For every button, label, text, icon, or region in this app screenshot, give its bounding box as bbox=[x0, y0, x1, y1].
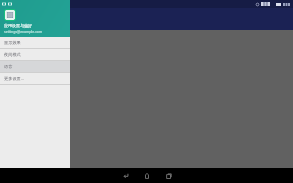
button[interactable]: Back bbox=[114, 168, 136, 183]
staticText: 更多设置... bbox=[4, 76, 25, 82]
button[interactable]: 更多设置... bbox=[0, 73, 70, 84]
button[interactable]: 夜间模式 bbox=[0, 49, 70, 60]
button[interactable]: 语言 bbox=[0, 61, 70, 72]
staticText: 显示效果 bbox=[4, 40, 21, 45]
button[interactable]: Recent apps bbox=[158, 168, 180, 183]
staticText: settings@example.com bbox=[4, 29, 43, 34]
staticText: 应用设置与偏好 bbox=[4, 23, 32, 28]
button[interactable]: Home bbox=[136, 168, 158, 183]
staticText: 语言 bbox=[4, 64, 13, 69]
button[interactable]: 显示效果 bbox=[0, 37, 70, 48]
staticText: 夜间模式 bbox=[4, 52, 21, 57]
